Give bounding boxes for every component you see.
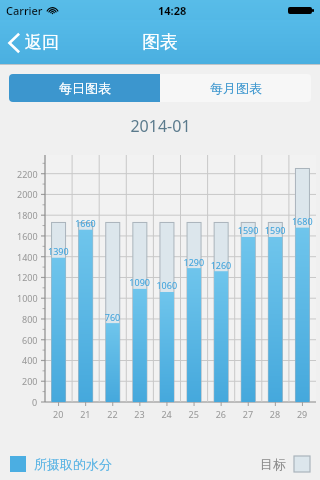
staticText: 14:28 bbox=[158, 3, 187, 18]
button[interactable]: 返回 bbox=[0, 26, 69, 59]
staticText: 目标 bbox=[260, 456, 286, 472]
staticText: 所摄取的水分 bbox=[34, 456, 112, 472]
staticText: 图表 bbox=[142, 31, 178, 54]
staticText: 返回 bbox=[25, 32, 59, 53]
staticText: 2014-01 bbox=[130, 115, 191, 137]
staticText: 每月图表 bbox=[210, 80, 262, 96]
button[interactable]: 每日图表 bbox=[9, 74, 160, 102]
staticText: 每日图表 bbox=[59, 80, 111, 96]
button[interactable]: 每月图表 bbox=[160, 74, 311, 102]
staticText: Carrier bbox=[6, 3, 43, 18]
